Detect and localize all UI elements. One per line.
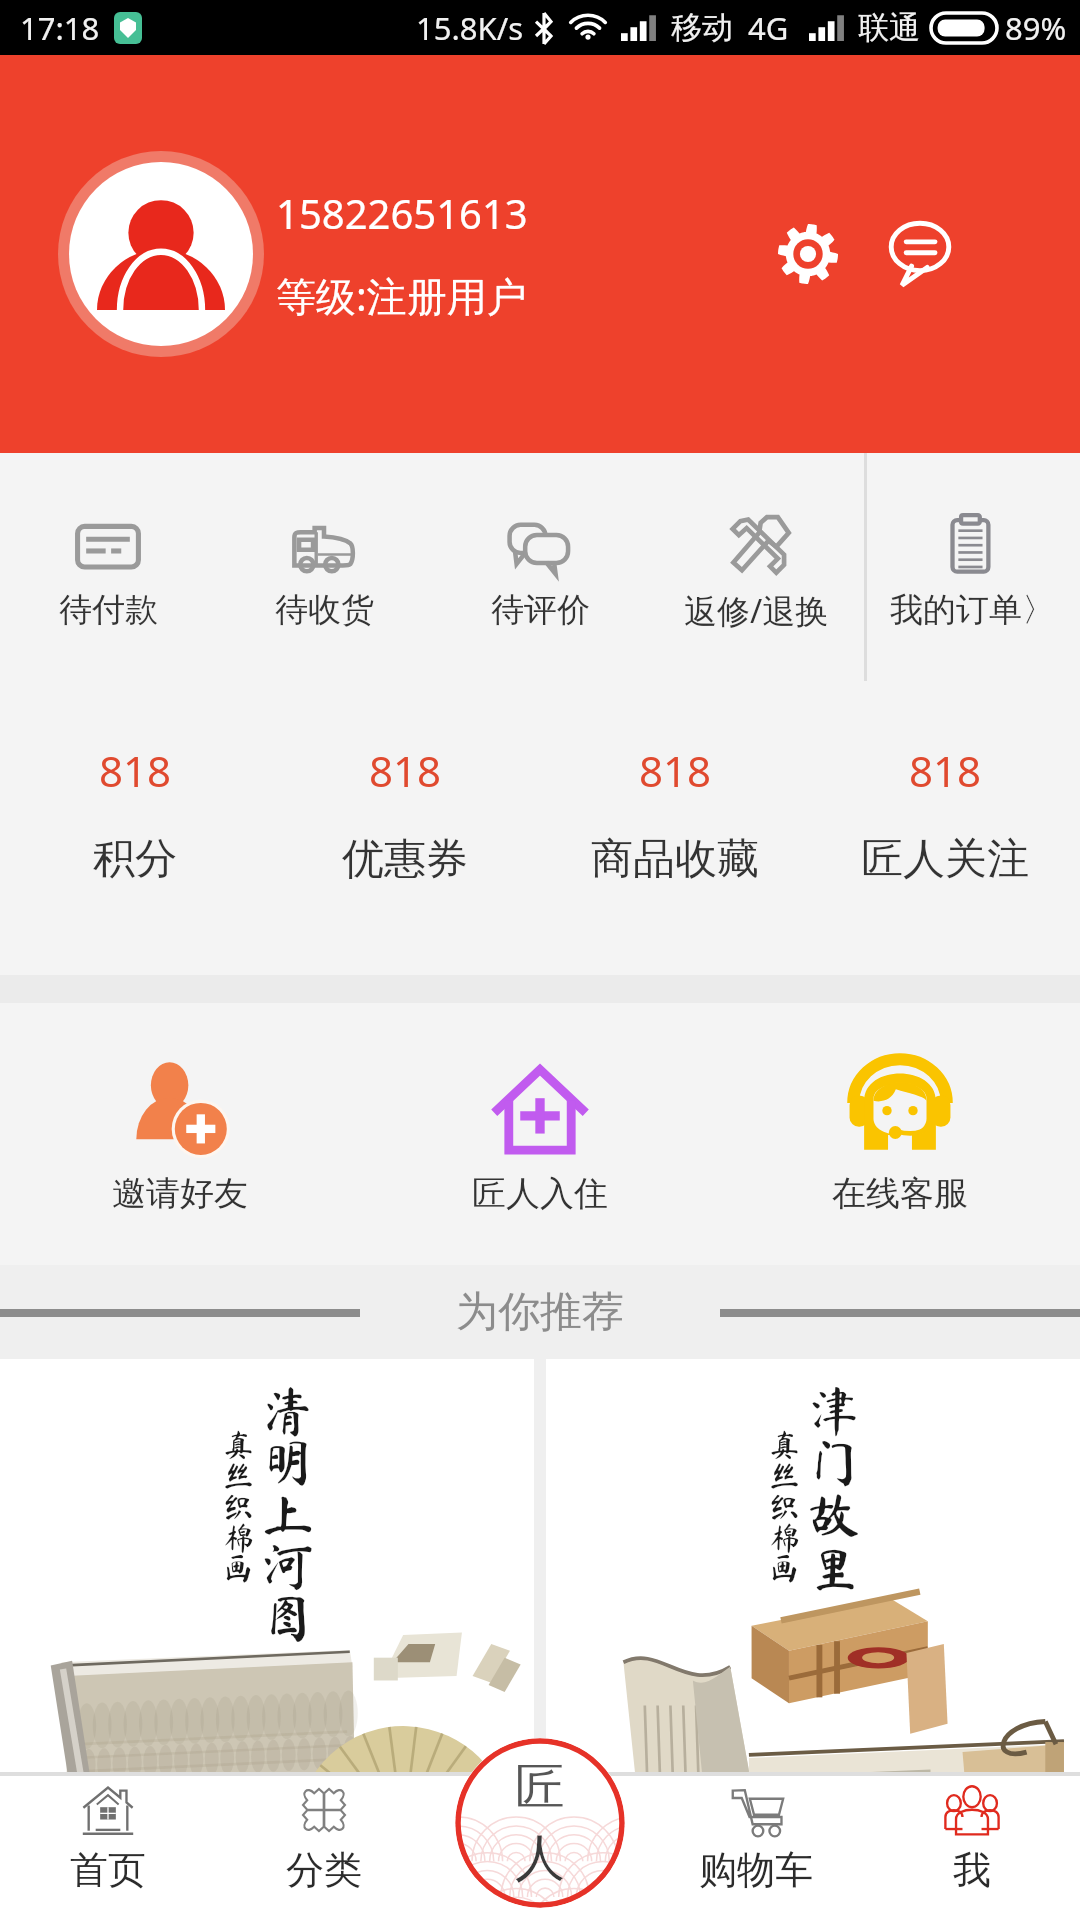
staticText: 818 (99, 742, 172, 799)
staticText: 棉 (769, 1522, 800, 1553)
button[interactable]: Messages (874, 208, 966, 300)
button[interactable]: 818 (810, 742, 1080, 886)
staticText: 818 (639, 742, 712, 799)
staticText: 丝 (769, 1460, 800, 1491)
staticText: 818 (909, 742, 982, 799)
button[interactable]: 首页 (0, 1772, 216, 1920)
button[interactable]: 购物车 (648, 1772, 864, 1920)
staticText: 积分 (93, 833, 177, 886)
staticText: 人 (515, 1827, 565, 1890)
staticText: 等级:注册用户 (276, 268, 527, 323)
staticText: 在线客服 (832, 1172, 968, 1215)
staticText: 门 (808, 1436, 861, 1488)
staticText: 我的订单〉 (890, 589, 1055, 631)
staticText: 故 (808, 1488, 861, 1540)
staticText: 棉 (223, 1522, 254, 1553)
staticText: 89% (1005, 7, 1067, 49)
staticText: 待收货 (275, 589, 374, 631)
button[interactable]: 我的订单〉 (864, 453, 1080, 681)
staticText: 真 (769, 1429, 800, 1460)
staticText: 为你推荐 (456, 1286, 624, 1339)
button[interactable]: 818 (540, 742, 810, 886)
staticText: 里 (808, 1540, 861, 1592)
button[interactable]: 待收货 (216, 453, 432, 681)
staticText: 画 (223, 1553, 254, 1584)
staticText: 织 (223, 1491, 254, 1522)
staticText: 河 (262, 1540, 315, 1592)
button[interactable]: 匠人入住 (360, 1054, 720, 1215)
staticText: 明 (262, 1436, 315, 1488)
staticText: 我 (953, 1846, 991, 1894)
button[interactable]: 818 (0, 742, 270, 886)
button[interactable]: 待付款 (0, 453, 216, 681)
button[interactable]: 待评价 (432, 453, 648, 681)
staticText: 待评价 (491, 589, 590, 631)
staticText: 购物车 (699, 1846, 813, 1894)
staticText: 邀请好友 (112, 1172, 248, 1215)
staticText: 匠人入住 (472, 1172, 608, 1215)
staticText: 15822651613 (276, 186, 528, 240)
staticText: 移动 (671, 8, 733, 47)
staticText: 津 (808, 1384, 861, 1436)
button[interactable]: 我 (864, 1772, 1080, 1920)
button[interactable]: 在线客服 (720, 1054, 1080, 1215)
staticText: 真 (223, 1429, 254, 1460)
staticText: 清 (262, 1384, 315, 1436)
staticText: 818 (369, 742, 442, 799)
button[interactable]: 分类 (216, 1772, 432, 1920)
button[interactable]: 匠人 (455, 1738, 625, 1908)
button[interactable]: 返修/退换 (648, 453, 864, 681)
staticText: 分类 (286, 1846, 362, 1894)
staticText: 15.8K/s (416, 7, 524, 49)
staticText: 匠 (515, 1756, 565, 1819)
staticText: 联通 (858, 8, 920, 47)
staticText: 丝 (223, 1460, 254, 1491)
staticText: 待付款 (59, 589, 158, 631)
staticText: 上 (262, 1488, 315, 1540)
staticText: 画 (769, 1553, 800, 1584)
staticText: 首页 (70, 1846, 146, 1894)
staticText: 图 (262, 1592, 315, 1644)
button[interactable]: 818 (270, 742, 540, 886)
button[interactable]: 清 (0, 1359, 534, 1815)
staticText: 织 (769, 1491, 800, 1522)
button[interactable]: 津 (546, 1359, 1080, 1815)
button[interactable]: Settings (762, 208, 854, 300)
button[interactable]: Avatar (58, 151, 264, 357)
staticText: 优惠券 (342, 833, 468, 886)
staticText: 商品收藏 (591, 833, 759, 886)
staticText: 4G (748, 7, 789, 49)
button[interactable]: 邀请好友 (0, 1054, 360, 1215)
staticText: 匠人关注 (861, 833, 1029, 886)
staticText: 17:18 (20, 7, 100, 49)
staticText: 返修/退换 (684, 588, 829, 633)
